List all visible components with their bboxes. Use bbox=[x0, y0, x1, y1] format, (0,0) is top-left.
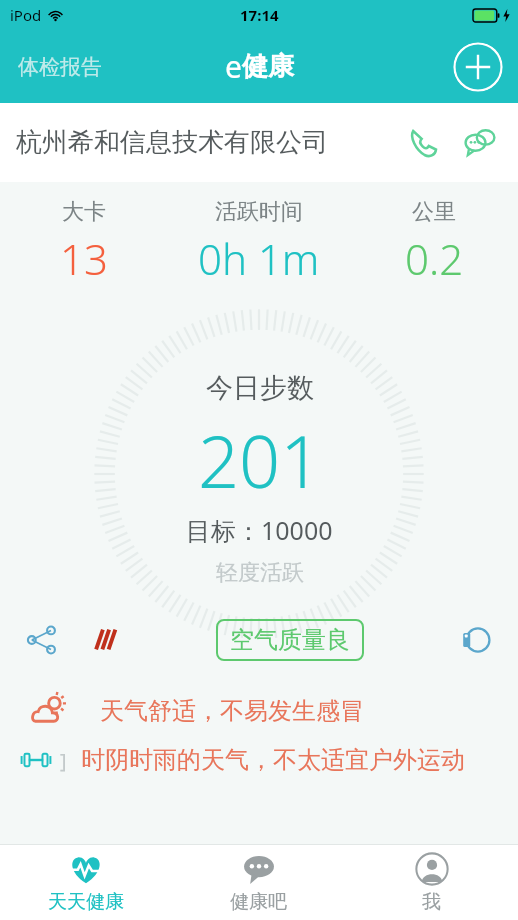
button[interactable]: 杭州希和信息技术有限公司 bbox=[0, 103, 518, 182]
staticText: 目标：10000 bbox=[186, 513, 333, 547]
button[interactable]: 天气舒适，不易发生感冒 bbox=[0, 685, 518, 737]
staticText: 轻度活跃 bbox=[216, 559, 304, 587]
button[interactable]: Add bbox=[453, 42, 503, 92]
button[interactable]: 体检报告 bbox=[14, 48, 106, 86]
staticText: e bbox=[225, 46, 242, 87]
button[interactable]: 今日步数 bbox=[186, 371, 333, 587]
staticText: 0.2 bbox=[405, 230, 464, 287]
button[interactable]: Call bbox=[402, 121, 446, 165]
staticText: 大卡 bbox=[62, 198, 106, 226]
button[interactable]: Message bbox=[458, 121, 502, 165]
button[interactable]: 活跃时间 bbox=[161, 196, 356, 289]
staticText: 杭州希和信息技术有限公司 bbox=[16, 126, 328, 159]
button[interactable]: Device bbox=[452, 616, 500, 664]
staticText: 空气质量良 bbox=[230, 625, 350, 655]
staticText: 13 bbox=[60, 230, 108, 287]
staticText: 时阴时雨的天气，不太适宜户外运动 bbox=[81, 745, 518, 775]
button[interactable]: 我 bbox=[345, 845, 518, 920]
staticText: 201 bbox=[198, 411, 322, 509]
staticText: 今日步数 bbox=[206, 371, 314, 405]
button[interactable]: 空气质量良 bbox=[216, 619, 364, 661]
staticText: 天气舒适，不易发生感冒 bbox=[100, 696, 364, 726]
staticText: 公里 bbox=[412, 198, 456, 226]
staticText: 天天健康 bbox=[48, 890, 124, 914]
button[interactable]: Calories bbox=[84, 618, 128, 662]
staticText: 17:14 bbox=[240, 5, 279, 25]
staticText: 健康吧 bbox=[230, 890, 287, 914]
button[interactable]: 健康吧 bbox=[172, 845, 345, 920]
staticText: iPod bbox=[10, 5, 42, 25]
staticText: 体检报告 bbox=[18, 54, 102, 80]
staticText: ] bbox=[60, 747, 67, 774]
staticText: 活跃时间 bbox=[215, 198, 303, 226]
button[interactable]: Share bbox=[18, 616, 66, 664]
button[interactable]: 公里 bbox=[356, 196, 512, 289]
button[interactable]: 大卡 bbox=[6, 196, 161, 289]
button[interactable]: 天天健康 bbox=[0, 845, 172, 920]
button[interactable]: ] bbox=[0, 737, 518, 783]
staticText: 0h 1m bbox=[198, 230, 320, 287]
staticText: 我 bbox=[422, 890, 441, 914]
staticText: 健康 bbox=[242, 50, 294, 83]
